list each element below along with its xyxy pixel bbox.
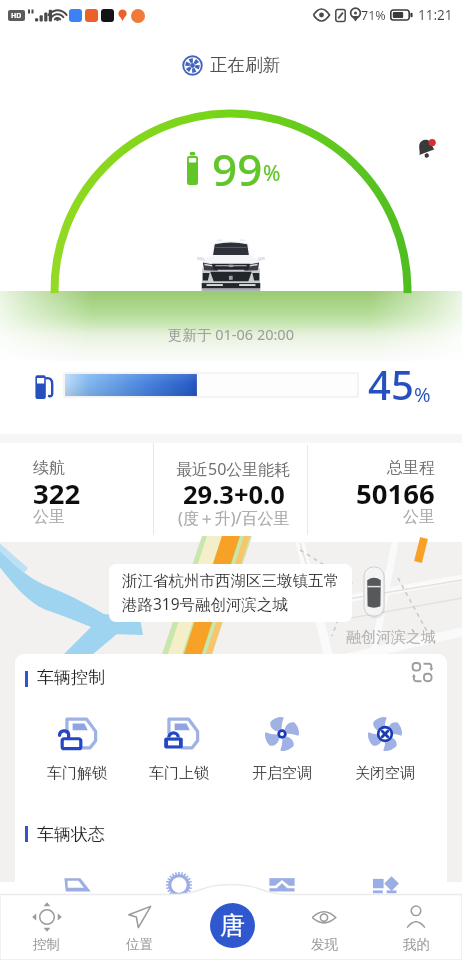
button[interactable]: 浙江省杭州市西湖区三墩镇五常: [122, 571, 339, 614]
button[interactable]: 开启空调: [230, 715, 333, 783]
staticText: 11:21: [418, 6, 453, 24]
button[interactable]: 发现: [278, 893, 370, 960]
button[interactable]: Doors: [26, 876, 128, 894]
button[interactable]: 车门上锁: [128, 715, 230, 783]
button[interactable]: Rearrange shortcuts: [407, 657, 437, 687]
staticText: 50166: [356, 475, 435, 512]
button[interactable]: 关闭空调: [333, 715, 436, 783]
button[interactable]: Tires: [128, 876, 230, 894]
staticText: 公里: [403, 507, 435, 527]
staticText: 车门解锁: [47, 764, 107, 783]
staticText: 融创河滨之城: [346, 628, 436, 647]
button[interactable]: Notifications: [408, 131, 442, 165]
button[interactable]: 车门解锁: [26, 715, 128, 783]
staticText: 正在刷新: [210, 54, 280, 76]
staticText: 唐: [220, 910, 245, 941]
staticText: 45: [368, 357, 414, 411]
staticText: 最近50公里能耗: [176, 458, 291, 480]
staticText: 开启空调: [252, 764, 312, 783]
staticText: 车辆状态: [37, 824, 105, 844]
button[interactable]: Lights: [333, 876, 436, 894]
staticText: 续航: [33, 458, 65, 478]
button[interactable]: Windows: [230, 876, 333, 894]
staticText: %: [263, 159, 281, 188]
staticText: 车门上锁: [149, 764, 209, 783]
staticText: 车辆控制: [37, 667, 105, 688]
staticText: 总里程: [387, 458, 435, 478]
staticText: 公里: [33, 507, 65, 527]
staticText: 322: [33, 475, 81, 512]
staticText: 71%: [361, 7, 386, 24]
button[interactable]: 位置: [93, 893, 186, 960]
staticText: 控制: [33, 936, 60, 953]
button[interactable]: 我的: [370, 893, 462, 960]
staticText: 关闭空调: [355, 764, 415, 783]
button[interactable]: 正在刷新: [182, 54, 280, 76]
staticText: 港路319号融创河滨之城: [122, 593, 289, 614]
staticText: 浙江省杭州市西湖区三墩镇五常: [122, 571, 339, 591]
staticText: 29.3+0.0: [183, 477, 285, 512]
staticText: 我的: [403, 936, 430, 953]
staticText: %: [414, 381, 431, 408]
staticText: 发现: [311, 936, 338, 953]
staticText: 99: [212, 139, 263, 199]
staticText: 更新于 01-06 20:00: [168, 324, 294, 344]
button[interactable]: 唐: [210, 903, 255, 948]
staticText: 位置: [126, 936, 153, 953]
button[interactable]: 控制: [0, 893, 93, 960]
staticText: HD: [11, 11, 22, 21]
staticText: (度＋升)/百公里: [178, 507, 290, 529]
